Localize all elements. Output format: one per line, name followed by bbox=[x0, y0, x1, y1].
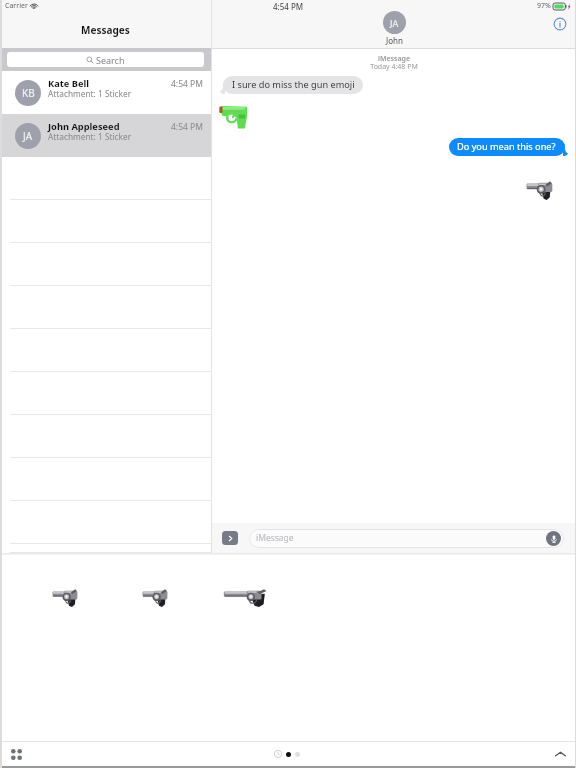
button[interactable]: Details bbox=[552, 16, 568, 32]
button[interactable] bbox=[223, 588, 264, 607]
staticText: John bbox=[386, 35, 403, 46]
button[interactable]: App Store bbox=[222, 531, 238, 545]
staticText: I sure do miss the gun emoji bbox=[232, 78, 355, 91]
staticText: iMessage bbox=[212, 54, 576, 64]
staticText: 4:54 PM bbox=[171, 78, 203, 90]
button[interactable]: Search bbox=[7, 52, 204, 67]
button[interactable] bbox=[52, 588, 79, 607]
button[interactable]: App drawer bbox=[8, 746, 24, 762]
staticText: Kate Bell bbox=[48, 77, 90, 90]
staticText: Messages bbox=[81, 23, 130, 37]
staticText: Attachment: 1 Sticker bbox=[48, 88, 132, 99]
staticText: Search bbox=[96, 54, 125, 66]
staticText: KB bbox=[22, 86, 35, 100]
button[interactable]: I sure do miss the gun emoji bbox=[220, 76, 365, 94]
button[interactable]: Dictate bbox=[546, 531, 561, 546]
staticText: iMessage bbox=[256, 532, 294, 544]
button[interactable]: Expand bbox=[552, 746, 568, 762]
staticText: Carrier bbox=[5, 1, 28, 11]
staticText: 97% bbox=[537, 1, 551, 11]
button[interactable]: KB bbox=[0, 71, 211, 114]
staticText: JA bbox=[23, 129, 33, 143]
button[interactable]: iMessage bbox=[249, 529, 564, 548]
staticText: Attachment: 1 Sticker bbox=[48, 131, 132, 142]
staticText: John Appleseed bbox=[48, 120, 120, 133]
button[interactable]: JA bbox=[383, 11, 406, 34]
staticText: JA bbox=[390, 17, 399, 29]
staticText: Today 4:48 PM bbox=[212, 62, 576, 72]
button[interactable] bbox=[142, 588, 169, 607]
button[interactable]: JA bbox=[0, 114, 211, 157]
staticText: Do you mean this one? bbox=[457, 140, 556, 153]
staticText: 4:54 PM bbox=[0, 1, 576, 12]
staticText: 4:54 PM bbox=[171, 121, 203, 133]
button[interactable]: Do you mean this one? bbox=[449, 138, 570, 156]
